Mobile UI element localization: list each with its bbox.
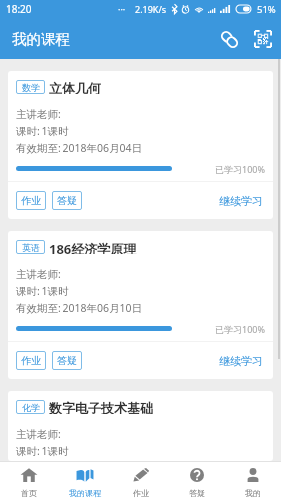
- staticText: 2.19K/s: [135, 3, 167, 15]
- staticText: 答疑: [189, 488, 205, 498]
- button[interactable]: 答疑: [169, 462, 225, 500]
- staticText: 我的课程: [12, 30, 70, 48]
- staticText: 英语: [22, 242, 40, 253]
- staticText: 我的: [245, 488, 261, 498]
- staticText: 已学习100%: [215, 163, 265, 175]
- button[interactable]: 作业: [113, 462, 169, 500]
- staticText: 已学习100%: [215, 323, 265, 335]
- staticText: 主讲老师:: [16, 267, 63, 281]
- button[interactable]: 继续学习: [217, 191, 265, 210]
- staticText: 立体几何: [49, 80, 101, 94]
- staticText: 主讲老师:: [16, 427, 63, 441]
- button[interactable]: 答疑: [52, 191, 82, 210]
- button[interactable]: 继续学习: [217, 351, 265, 370]
- staticText: 18:20: [6, 2, 32, 16]
- staticText: 答疑: [57, 354, 77, 367]
- staticText: 首页: [21, 488, 37, 498]
- staticText: 化学: [22, 402, 40, 413]
- staticText: 数学: [22, 82, 40, 93]
- staticText: 作业: [21, 194, 41, 207]
- staticText: 有效期至: 2018年06月04日: [16, 141, 143, 155]
- button[interactable]: 我的: [225, 462, 281, 500]
- staticText: 课时: 1课时: [16, 444, 69, 458]
- staticText: 课时: 1课时: [16, 124, 69, 138]
- button[interactable]: 作业: [16, 351, 46, 370]
- staticText: 作业: [21, 354, 41, 367]
- staticText: ···: [118, 3, 126, 15]
- staticText: 51%: [257, 3, 276, 16]
- button[interactable]: 答疑: [52, 351, 82, 370]
- button[interactable]: Scan QR code: [248, 24, 278, 54]
- staticText: 数字电子技术基础: [49, 400, 153, 414]
- button[interactable]: 英语: [8, 231, 273, 379]
- button[interactable]: 数学: [8, 71, 273, 219]
- staticText: 继续学习: [219, 194, 263, 207]
- staticText: 作业: [133, 488, 149, 498]
- button[interactable]: 作业: [16, 191, 46, 210]
- button[interactable]: 首页: [0, 462, 57, 500]
- staticText: 答疑: [57, 194, 77, 207]
- staticText: 有效期至: 2018年06月10日: [16, 301, 143, 315]
- button[interactable]: 我的课程: [57, 462, 113, 500]
- button[interactable]: Share link: [214, 24, 244, 54]
- staticText: 我的课程: [69, 488, 101, 498]
- button[interactable]: 化学: [8, 391, 273, 461]
- staticText: 主讲老师:: [16, 107, 63, 121]
- staticText: 186经济学原理: [49, 240, 137, 254]
- staticText: 继续学习: [219, 354, 263, 367]
- staticText: 课时: 1课时: [16, 284, 69, 298]
